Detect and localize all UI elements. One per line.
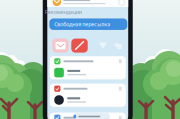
button[interactable] (50, 84, 126, 107)
button[interactable] (50, 56, 126, 79)
staticText: Свободная пересылка (54, 21, 110, 28)
staticText: Рекомендации (45, 8, 82, 16)
button[interactable]: Reply (113, 42, 120, 49)
button[interactable]: Свободная пересылка (49, 18, 127, 30)
button[interactable]: Mark as unread (52, 39, 69, 53)
button[interactable]: Forward (98, 42, 106, 49)
button[interactable]: Delete (71, 39, 88, 53)
button[interactable] (74, 113, 110, 119)
button[interactable] (50, 113, 126, 119)
